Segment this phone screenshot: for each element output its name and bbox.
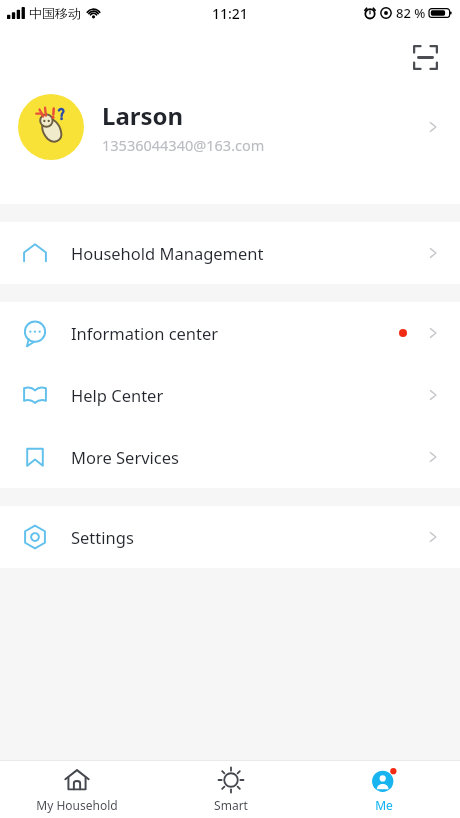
staticText: Household Management <box>71 242 424 264</box>
staticText: Larson <box>102 99 184 132</box>
staticText: Settings <box>71 526 424 548</box>
staticText: 中国移动 <box>29 5 81 21</box>
staticText: My Household <box>36 797 118 813</box>
button[interactable]: Help Center <box>0 364 460 426</box>
button[interactable]: More Services <box>0 426 460 488</box>
staticText: Help Center <box>71 384 424 406</box>
staticText: 11:21 <box>212 4 248 23</box>
staticText: Information center <box>71 322 399 344</box>
button[interactable]: Scan QR code <box>404 36 446 78</box>
staticText: More Services <box>71 446 424 468</box>
button[interactable]: Me <box>307 761 460 818</box>
button[interactable]: Household Management <box>0 222 460 284</box>
button[interactable]: Settings <box>0 506 460 568</box>
staticText: Smart <box>214 797 248 813</box>
button[interactable]: Information center <box>0 302 460 364</box>
staticText: 82 % <box>396 4 426 22</box>
staticText: Me <box>375 797 393 813</box>
button[interactable]: Smart <box>154 761 307 818</box>
button[interactable]: Larson <box>0 84 460 170</box>
button[interactable]: My Household <box>0 761 154 818</box>
staticText: 13536044340@163.com <box>102 135 265 155</box>
